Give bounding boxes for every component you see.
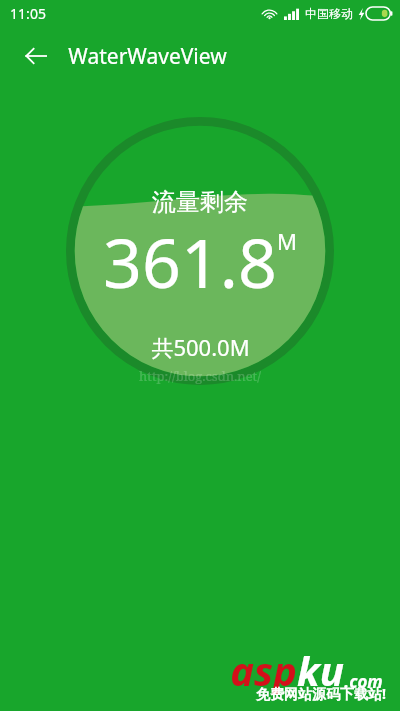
button[interactable]: Back bbox=[12, 32, 60, 80]
button[interactable]: Data usage wave bbox=[57, 117, 343, 385]
staticText: 共500.0M bbox=[151, 332, 250, 362]
staticText: 361.8 bbox=[103, 215, 277, 308]
staticText: 流量剩余 bbox=[152, 187, 248, 217]
staticText: 免费网站源码下载站! bbox=[256, 684, 386, 703]
staticText: .com bbox=[344, 670, 383, 693]
staticText: http://blog.csdn.net/ bbox=[139, 367, 261, 385]
staticText: ku bbox=[297, 643, 344, 697]
staticText: 11:05 bbox=[10, 4, 46, 23]
staticText: 中国移动 bbox=[305, 6, 353, 21]
staticText: WaterWaveView bbox=[68, 42, 227, 71]
staticText: asp bbox=[230, 643, 297, 697]
staticText: M bbox=[277, 226, 297, 256]
